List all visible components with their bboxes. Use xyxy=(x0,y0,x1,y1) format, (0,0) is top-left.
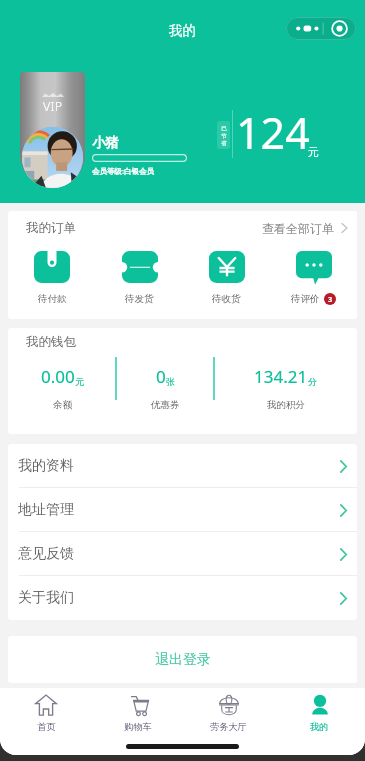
button[interactable]: More and close xyxy=(286,17,356,40)
staticText: 我的 xyxy=(169,22,196,39)
staticText: 关于我们 xyxy=(18,589,74,607)
staticText: 我的积分 xyxy=(267,399,305,411)
button[interactable]: 退出登录 xyxy=(8,636,357,683)
staticText: 我的 xyxy=(310,721,329,733)
staticText: 首页 xyxy=(37,721,56,733)
staticText: 优惠券 xyxy=(151,399,180,411)
staticText: 0.00 xyxy=(41,365,75,388)
button[interactable]: 0 xyxy=(116,356,214,434)
staticText: 意见反馈 xyxy=(18,545,74,563)
staticText: 134.21 xyxy=(254,365,308,388)
staticText: 小猪 xyxy=(92,134,119,151)
button[interactable]: 待发货 xyxy=(96,245,183,319)
button[interactable]: 待收货 xyxy=(183,245,270,319)
button[interactable]: 首页 xyxy=(0,688,92,738)
staticText: 我的订单 xyxy=(26,220,76,236)
button[interactable]: 134.21 xyxy=(214,356,357,434)
staticText: 0 xyxy=(156,365,166,388)
button[interactable]: 关于我们 xyxy=(8,576,357,620)
staticText: 张 xyxy=(166,376,175,387)
button[interactable]: 待付款 xyxy=(8,245,96,319)
button[interactable]: 地址管理 xyxy=(8,488,357,532)
staticText: 我的钱包 xyxy=(26,334,76,350)
staticText: 购物车 xyxy=(124,721,152,733)
staticText: 待评价 xyxy=(291,293,320,305)
button[interactable]: 意见反馈 xyxy=(8,532,357,576)
staticText: 地址管理 xyxy=(18,501,74,519)
staticText: 我的资料 xyxy=(18,457,74,475)
staticText: 查看全部订单 xyxy=(262,221,334,236)
button[interactable]: 劳务大厅 xyxy=(183,688,274,738)
staticText: VIP xyxy=(43,98,63,115)
button[interactable]: 我的 xyxy=(274,688,365,738)
staticText: 已 节 省 xyxy=(221,125,227,146)
staticText: 元 xyxy=(75,376,84,387)
button[interactable]: 我的资料 xyxy=(8,444,357,488)
button[interactable]: 0.00 xyxy=(8,356,116,434)
staticText: 124 xyxy=(236,103,310,162)
button[interactable]: 购物车 xyxy=(92,688,183,738)
staticText: 分 xyxy=(308,376,317,387)
staticText: 待付款 xyxy=(38,293,67,305)
staticText: 余额 xyxy=(53,399,72,411)
staticText: 待收货 xyxy=(212,293,241,305)
staticText: 待发货 xyxy=(125,293,154,305)
staticText: 3 xyxy=(328,294,333,304)
staticText: 会员等级:白银会员 xyxy=(92,166,155,176)
staticText: 劳务大厅 xyxy=(210,721,247,733)
staticText: 元 xyxy=(308,145,319,159)
button[interactable]: 待评价 xyxy=(270,245,357,319)
button[interactable]: 我的订单 xyxy=(8,211,357,245)
staticText: 退出登录 xyxy=(155,651,211,669)
